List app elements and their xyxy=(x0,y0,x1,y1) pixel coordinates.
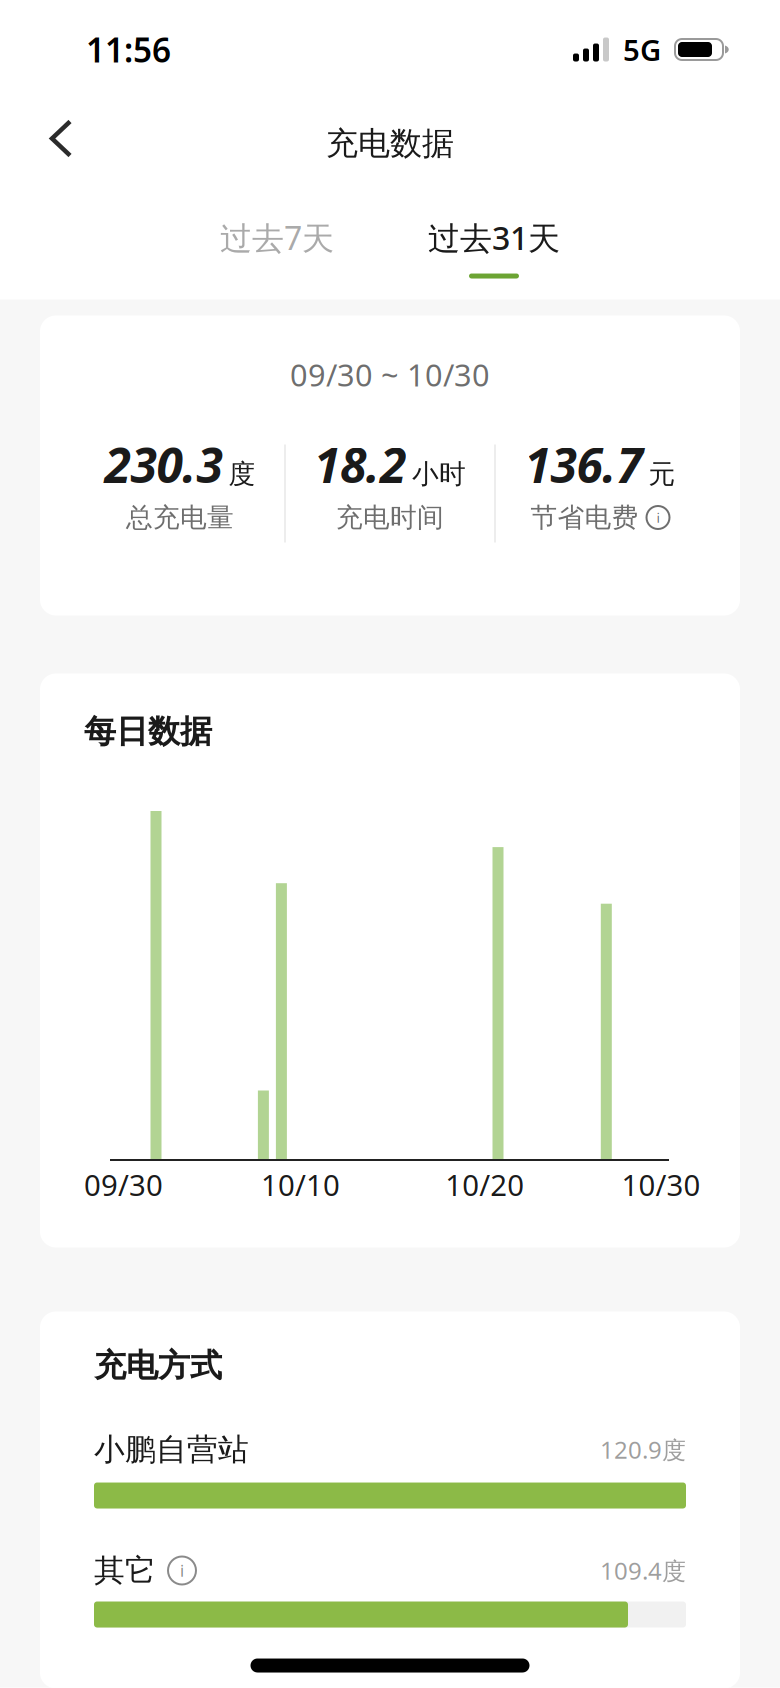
staticText: 其它 xyxy=(94,1552,156,1589)
staticText: 230.3 xyxy=(104,433,222,496)
button[interactable]: i xyxy=(646,506,669,529)
staticText: 136.7 xyxy=(524,433,642,496)
staticText: 充电数据 xyxy=(326,124,454,163)
staticText: 节省电费 xyxy=(530,501,638,534)
staticText: 09/30 xyxy=(84,1165,163,1204)
staticText: 10/20 xyxy=(445,1165,524,1204)
staticText: 5G xyxy=(623,30,661,69)
button[interactable]: 过去7天 xyxy=(220,213,334,278)
staticText: 过去31天 xyxy=(428,216,560,259)
staticText: 每日数据 xyxy=(84,712,212,751)
staticText: 09/30 ~ 10/30 xyxy=(290,354,490,395)
staticText: 小鹏自营站 xyxy=(94,1431,249,1468)
staticText: 小时 xyxy=(412,458,466,491)
staticText: 10/10 xyxy=(261,1165,340,1204)
staticText: 度 xyxy=(228,458,255,491)
button[interactable]: i xyxy=(168,1556,196,1584)
staticText: 过去7天 xyxy=(220,216,334,259)
staticText: 总充电量 xyxy=(126,501,234,534)
staticText: 充电方式 xyxy=(94,1346,222,1385)
staticText: 18.2 xyxy=(314,433,406,496)
staticText: i xyxy=(180,1560,184,1581)
staticText: i xyxy=(656,509,659,526)
staticText: 充电时间 xyxy=(336,501,444,534)
button[interactable]: 过去31天 xyxy=(428,213,560,278)
staticText: 元 xyxy=(648,458,675,491)
staticText: 109.4度 xyxy=(600,1555,686,1586)
staticText: 11:56 xyxy=(86,27,171,72)
button[interactable] xyxy=(0,100,72,186)
staticText: 10/30 xyxy=(621,1165,700,1204)
staticText: 120.9度 xyxy=(600,1434,686,1465)
